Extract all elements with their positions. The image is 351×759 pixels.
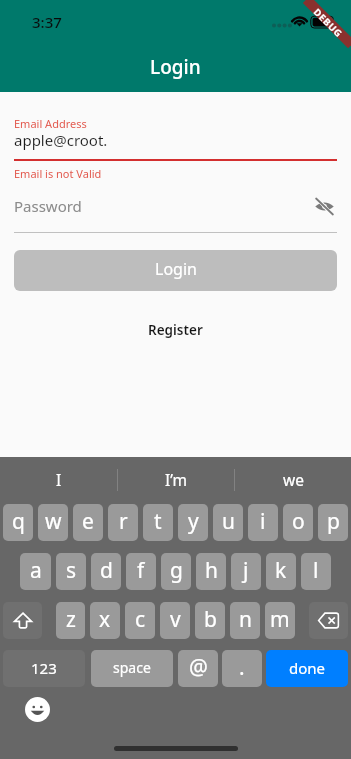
button[interactable]: i bbox=[248, 504, 278, 541]
button[interactable]: k bbox=[266, 553, 296, 590]
button[interactable]: x bbox=[90, 602, 120, 639]
staticText: space bbox=[113, 658, 151, 677]
staticText: t bbox=[154, 507, 162, 536]
staticText: we bbox=[283, 469, 304, 490]
staticText: v bbox=[170, 605, 181, 634]
button[interactable]: w bbox=[38, 504, 68, 541]
staticText: o bbox=[292, 507, 305, 536]
staticText: h bbox=[205, 556, 218, 585]
button[interactable]: b bbox=[195, 602, 225, 639]
button[interactable]: j bbox=[231, 553, 261, 590]
button[interactable]: m bbox=[265, 602, 295, 639]
button[interactable]: l bbox=[301, 553, 331, 590]
button[interactable]: d bbox=[91, 553, 121, 590]
staticText: k bbox=[275, 556, 287, 585]
staticText: j bbox=[243, 556, 249, 585]
staticText: u bbox=[222, 507, 235, 536]
staticText: s bbox=[66, 556, 77, 585]
staticText: d bbox=[100, 556, 113, 585]
staticText: DEBUG bbox=[313, 6, 345, 38]
button[interactable]: I’m bbox=[118, 457, 234, 502]
button[interactable]: Emoji bbox=[25, 697, 50, 722]
button[interactable]: z bbox=[56, 602, 85, 639]
staticText: Login bbox=[155, 258, 197, 280]
button[interactable]: c bbox=[125, 602, 155, 639]
staticText: z bbox=[66, 605, 76, 634]
button[interactable]: u bbox=[213, 504, 243, 541]
staticText: y bbox=[188, 507, 199, 536]
button[interactable]: q bbox=[3, 504, 33, 541]
button[interactable]: Shift bbox=[3, 602, 42, 639]
staticText: @ bbox=[189, 653, 208, 682]
staticText: a bbox=[30, 556, 42, 585]
button[interactable]: a bbox=[20, 553, 51, 590]
staticText: f bbox=[137, 556, 145, 585]
staticText: I bbox=[56, 469, 62, 490]
button[interactable]: t bbox=[143, 504, 173, 541]
button[interactable]: f bbox=[126, 553, 156, 590]
button[interactable]: Backspace bbox=[309, 602, 348, 639]
staticText: Email Address bbox=[14, 116, 87, 131]
staticText: apple@croot. bbox=[14, 130, 108, 150]
button[interactable]: p bbox=[318, 504, 348, 541]
button[interactable]: Show password bbox=[311, 193, 337, 219]
staticText: 123 bbox=[31, 658, 57, 678]
button[interactable]: I bbox=[0, 457, 117, 502]
button[interactable]: . bbox=[222, 650, 262, 687]
button[interactable]: g bbox=[161, 553, 191, 590]
button[interactable]: @ bbox=[178, 650, 218, 687]
staticText: x bbox=[99, 605, 111, 634]
staticText: g bbox=[170, 556, 183, 585]
button[interactable]: we bbox=[235, 457, 351, 502]
button[interactable]: e bbox=[73, 504, 103, 541]
staticText: Email is not Valid bbox=[14, 166, 102, 181]
staticText: b bbox=[204, 605, 217, 634]
button[interactable]: n bbox=[230, 602, 260, 639]
button[interactable]: Login bbox=[14, 250, 337, 291]
button[interactable]: r bbox=[108, 504, 138, 541]
staticText: done bbox=[289, 658, 326, 678]
staticText: c bbox=[135, 605, 146, 634]
staticText: Login bbox=[150, 54, 201, 80]
staticText: I’m bbox=[165, 469, 187, 490]
staticText: m bbox=[270, 605, 290, 634]
button[interactable]: y bbox=[178, 504, 208, 541]
staticText: r bbox=[119, 507, 128, 536]
staticText: . bbox=[239, 653, 245, 682]
button[interactable]: done bbox=[266, 650, 348, 687]
button[interactable]: o bbox=[283, 504, 313, 541]
button[interactable]: space bbox=[91, 650, 173, 687]
staticText: i bbox=[260, 507, 266, 536]
button[interactable]: h bbox=[196, 553, 226, 590]
staticText: w bbox=[45, 507, 62, 536]
staticText: q bbox=[12, 507, 25, 536]
staticText: e bbox=[82, 507, 94, 536]
staticText: 3:37 bbox=[32, 12, 62, 32]
staticText: p bbox=[327, 507, 340, 536]
button[interactable]: v bbox=[160, 602, 190, 639]
button[interactable]: s bbox=[56, 553, 86, 590]
button[interactable]: 123 bbox=[3, 650, 85, 687]
button[interactable]: Register bbox=[138, 316, 213, 344]
staticText: n bbox=[239, 605, 252, 634]
staticText: l bbox=[313, 556, 319, 585]
staticText: Password bbox=[14, 196, 82, 216]
staticText: Register bbox=[148, 321, 203, 339]
